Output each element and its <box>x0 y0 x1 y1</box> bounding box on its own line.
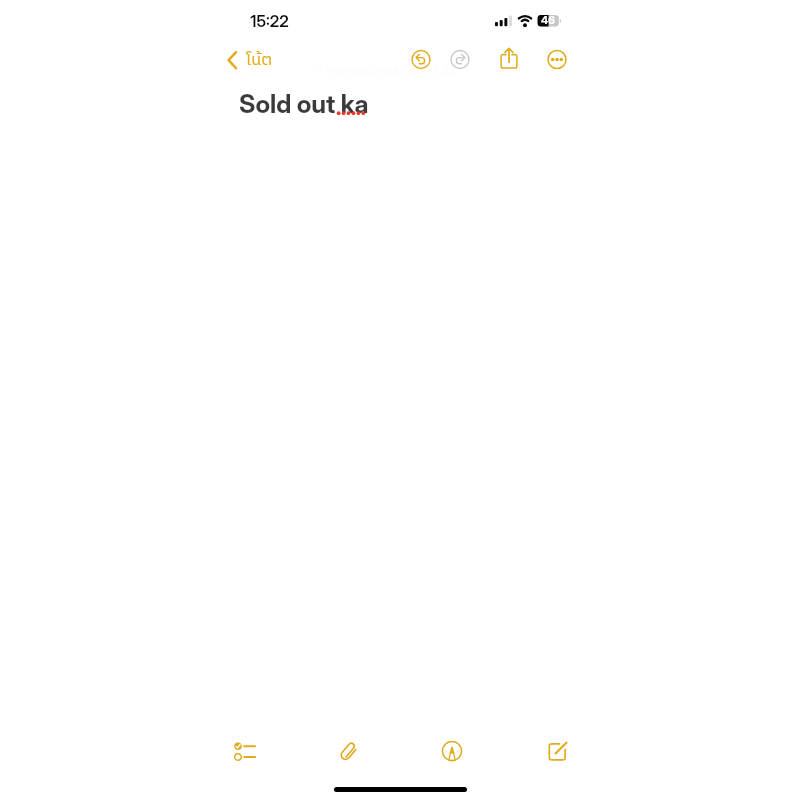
button[interactable]: Markup <box>438 737 466 765</box>
staticText: โน้ต <box>246 47 273 74</box>
button[interactable]: Share <box>495 42 523 70</box>
button[interactable]: Undo <box>407 45 435 73</box>
staticText: 7 กุมภาพันธ์ 2568 เวลา 15:21 <box>316 63 456 81</box>
staticText: Sold out ka <box>239 89 369 119</box>
button[interactable]: โน้ต <box>224 45 278 75</box>
button[interactable]: Checklist <box>233 740 261 768</box>
button[interactable]: More options <box>543 45 571 73</box>
button[interactable]: Attach file <box>335 737 363 765</box>
staticText: 15:22 <box>250 11 289 31</box>
button[interactable]: New note <box>545 737 573 765</box>
button[interactable]: Redo <box>446 45 474 73</box>
staticText: 46 <box>541 14 555 26</box>
